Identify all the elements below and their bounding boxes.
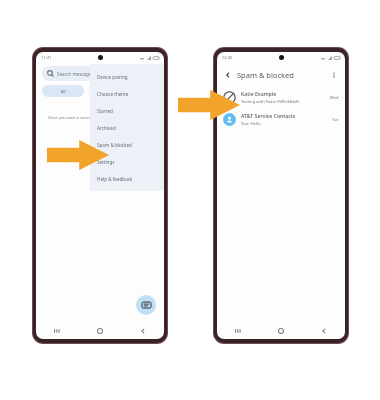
button[interactable]: Choose theme bbox=[90, 85, 164, 102]
button[interactable]: Aud bbox=[88, 85, 130, 97]
button[interactable]: Archived bbox=[90, 119, 164, 136]
button[interactable]: Home bbox=[78, 323, 121, 339]
staticText: Wed bbox=[330, 95, 339, 100]
button[interactable]: All bbox=[42, 85, 84, 97]
staticText: AT&T Service Contacts bbox=[241, 112, 296, 119]
staticText: Texting with Katie (585/####) bbox=[241, 99, 299, 105]
staticText: You: Hello bbox=[241, 121, 261, 127]
staticText: Tue bbox=[332, 117, 339, 122]
button[interactable]: Starred bbox=[90, 102, 164, 119]
staticText: Choose theme bbox=[97, 91, 129, 97]
button[interactable]: Back bbox=[302, 323, 345, 339]
staticText: Device pairing bbox=[97, 74, 128, 80]
button[interactable]: Help & feedback bbox=[90, 170, 164, 187]
button[interactable]: Spam & blocked bbox=[90, 136, 164, 153]
button[interactable]: Device pairing bbox=[90, 68, 164, 85]
staticText: Spam & blocked bbox=[97, 142, 132, 148]
button[interactable]: Search messages bbox=[42, 66, 158, 81]
staticText: Archived bbox=[97, 125, 116, 131]
staticText: Help & feedback bbox=[97, 176, 133, 182]
button[interactable]: Katie Example bbox=[217, 86, 345, 108]
staticText: Search messages bbox=[57, 71, 94, 77]
button[interactable]: Back bbox=[222, 69, 234, 81]
staticText: Katie Example bbox=[241, 90, 277, 97]
button[interactable]: More options bbox=[328, 69, 340, 81]
button[interactable]: Settings bbox=[90, 153, 164, 170]
button[interactable]: Start chat bbox=[136, 295, 156, 315]
staticText: All bbox=[61, 89, 66, 94]
staticText: 11:41 bbox=[41, 55, 52, 60]
staticText: Spam & blocked bbox=[237, 70, 294, 80]
button[interactable]: Recents bbox=[36, 323, 78, 339]
staticText: Once you start a conversation bbox=[48, 115, 105, 120]
button[interactable]: Home bbox=[259, 323, 302, 339]
button[interactable]: Back bbox=[121, 323, 164, 339]
staticText: Settings bbox=[97, 159, 115, 165]
staticText: Aud bbox=[105, 89, 113, 94]
button[interactable]: AT&T Service Contacts bbox=[217, 108, 345, 130]
staticText: 12:45 bbox=[222, 55, 233, 60]
staticText: Starred bbox=[97, 108, 113, 114]
button[interactable]: Recents bbox=[217, 323, 259, 339]
